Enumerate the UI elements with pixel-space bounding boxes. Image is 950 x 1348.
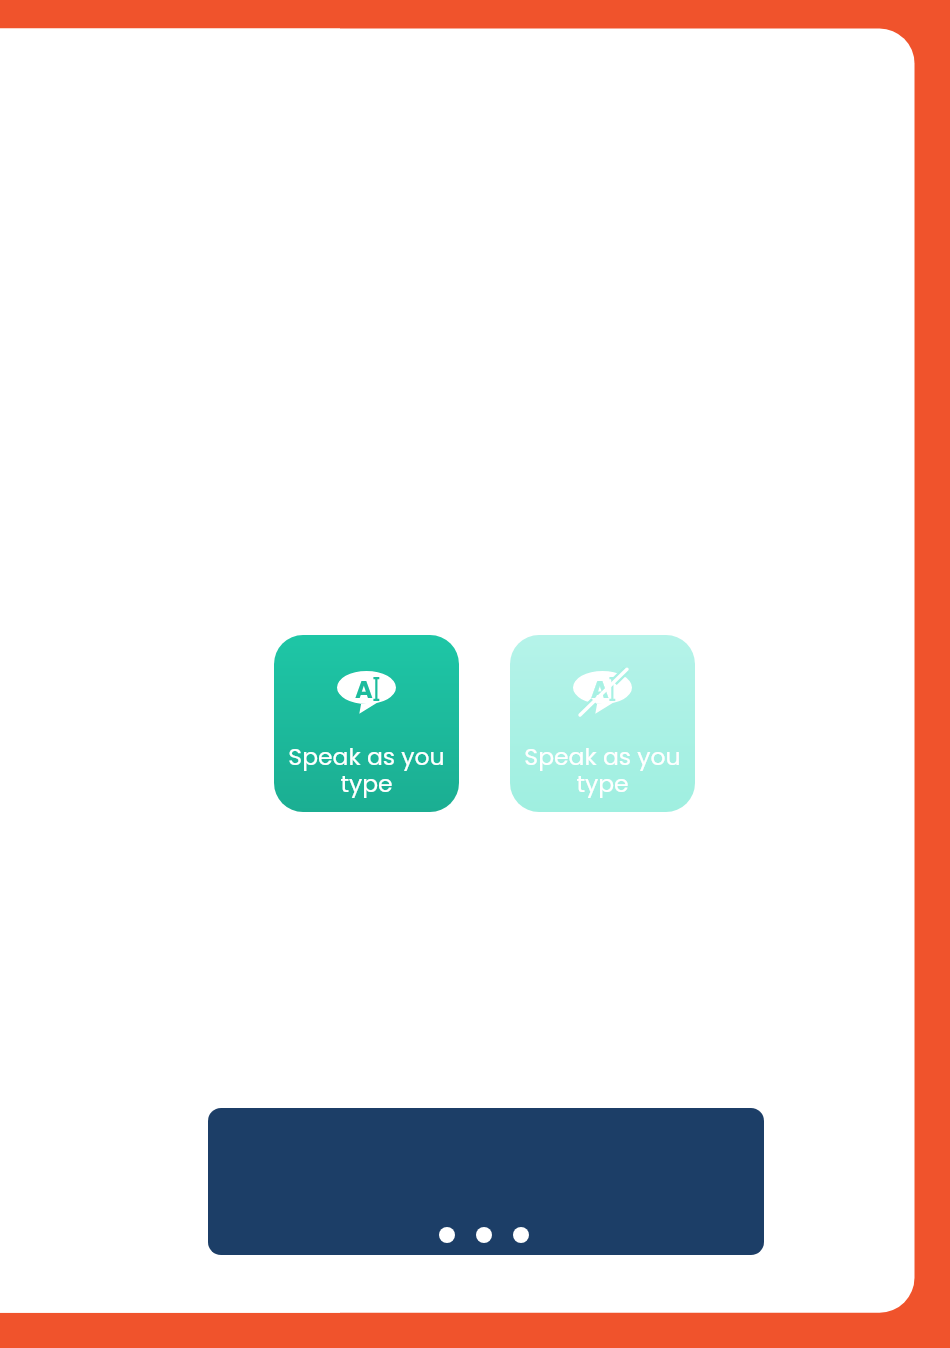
staticText: Speak as you type — [282, 740, 451, 800]
button[interactable]: Page indicator — [208, 1108, 764, 1255]
other: Speak as you type off — [573, 671, 632, 715]
staticText: A — [591, 673, 609, 707]
button[interactable]: Speak as you type on — [274, 635, 459, 812]
staticText: A — [355, 673, 373, 707]
other: Speak as you type on — [337, 671, 396, 715]
button[interactable]: Speak as you type off — [510, 635, 695, 812]
staticText: Speak as you type — [518, 740, 687, 800]
